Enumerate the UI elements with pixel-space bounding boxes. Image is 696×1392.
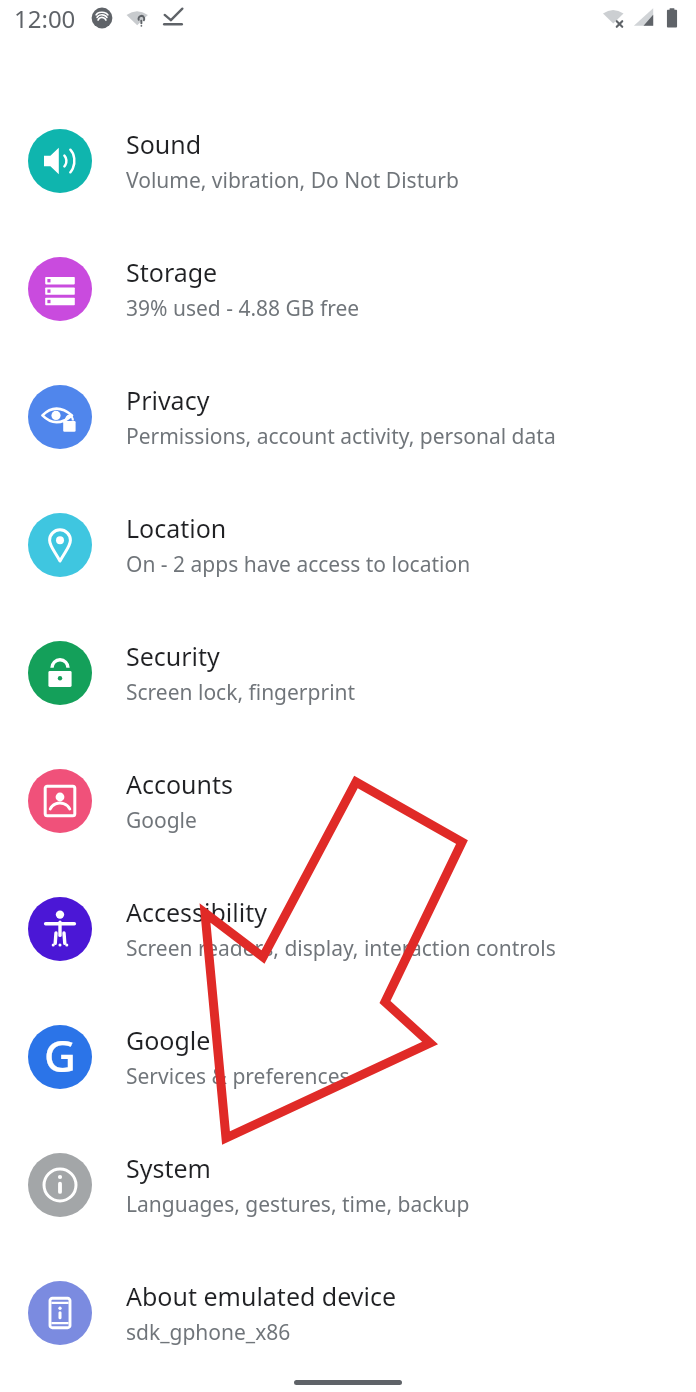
button[interactable]: System [0,1121,696,1249]
staticText: System [126,1151,211,1185]
staticText: Languages, gestures, time, backup [126,1190,470,1219]
staticText: Permissions, account activity, personal … [126,422,556,451]
staticText: G [44,1025,76,1085]
staticText: Google [126,806,197,835]
staticText: 39% used - 4.88 GB free [126,294,360,323]
staticText: Location [126,511,227,545]
button[interactable]: Sound [0,97,696,225]
staticText: Sound [126,127,202,161]
staticText: Volume, vibration, Do Not Disturb [126,166,459,195]
staticText: About emulated device [126,1279,397,1313]
staticText: Security [126,639,220,673]
button[interactable]: G [0,993,696,1121]
staticText: Accessibility [126,895,267,929]
staticText: Screen readers, display, interaction con… [126,934,556,963]
staticText: Storage [126,255,218,289]
staticText: Google [126,1023,211,1057]
button[interactable]: Privacy [0,353,696,481]
staticText: Services & preferences [126,1062,350,1091]
button[interactable]: About emulated device [0,1249,696,1377]
button[interactable]: Accounts [0,737,696,865]
staticText: sdk_gphone_x86 [126,1318,291,1347]
staticText: Privacy [126,383,210,417]
button[interactable]: Location [0,481,696,609]
staticText: 12:00 [14,2,76,35]
staticText: On - 2 apps have access to location [126,550,471,579]
button[interactable]: Security [0,609,696,737]
staticText: Screen lock, fingerprint [126,678,356,707]
staticText: Accounts [126,767,234,801]
button[interactable]: Storage [0,225,696,353]
button[interactable]: Accessibility [0,865,696,993]
